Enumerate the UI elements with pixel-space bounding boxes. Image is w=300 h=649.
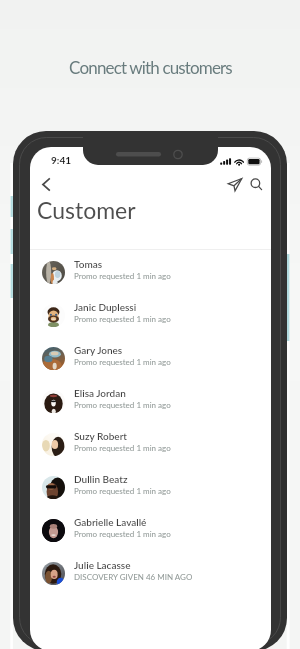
button[interactable]: Gabrielle Lavallé — [30, 509, 271, 552]
staticText: Tomas — [74, 258, 103, 270]
staticText: Janic Duplessi — [74, 301, 137, 313]
staticText: Promo requested 1 min ago — [74, 400, 171, 410]
staticText: Customer — [37, 196, 136, 224]
staticText: Suzy Robert — [74, 430, 128, 442]
staticText: Dullin Beatz — [74, 473, 128, 485]
staticText: Gary Jones — [74, 344, 123, 356]
button[interactable]: Dullin Beatz — [30, 466, 271, 509]
staticText: Promo requested 1 min ago — [74, 486, 171, 496]
staticText: Promo requested 1 min ago — [74, 357, 171, 367]
staticText: DISCOVERY GIVEN 46 MIN AGO — [74, 572, 193, 582]
staticText: Promo requested 1 min ago — [74, 271, 171, 281]
button[interactable]: Search — [243, 171, 269, 197]
staticText: 9:41 — [51, 154, 71, 166]
staticText: Elisa Jordan — [74, 387, 126, 399]
button[interactable]: Back — [33, 171, 59, 197]
button[interactable]: Gary Jones — [30, 337, 271, 380]
staticText: Promo requested 1 min ago — [74, 529, 171, 539]
staticText: Promo requested 1 min ago — [74, 443, 171, 453]
button[interactable]: Send message — [222, 171, 248, 197]
staticText: Connect with customers — [69, 57, 232, 77]
staticText: Promo requested 1 min ago — [74, 314, 171, 324]
button[interactable]: Julie Lacasse — [30, 552, 271, 595]
button[interactable]: Elisa Jordan — [30, 380, 271, 423]
button[interactable]: Tomas — [30, 251, 271, 294]
staticText: Gabrielle Lavallé — [74, 516, 147, 528]
button[interactable]: Janic Duplessi — [30, 294, 271, 337]
staticText: Julie Lacasse — [74, 559, 131, 571]
button[interactable]: Suzy Robert — [30, 423, 271, 466]
